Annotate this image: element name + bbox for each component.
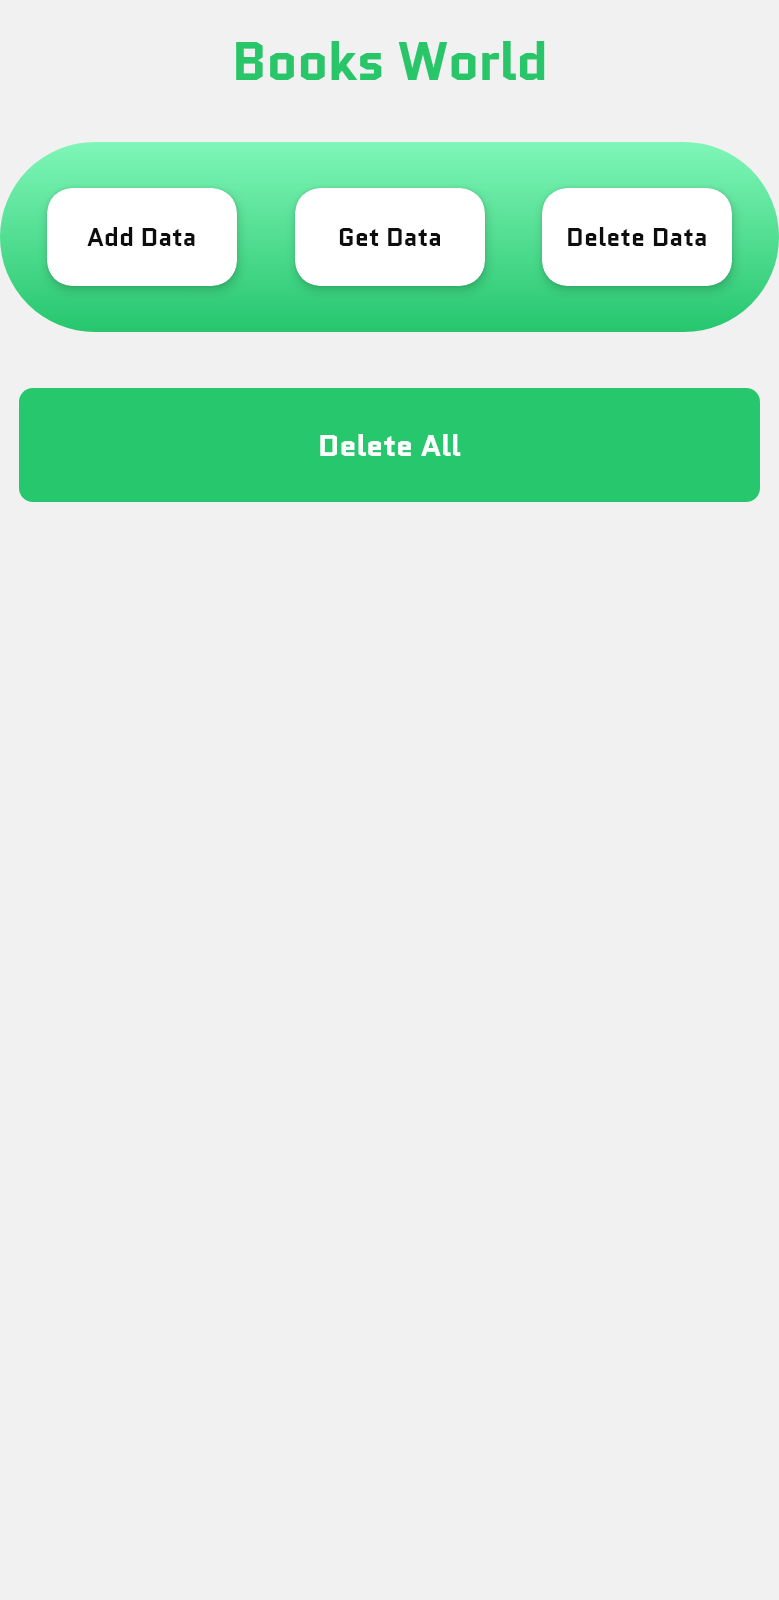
staticText: Delete Data: [566, 219, 708, 255]
staticText: Get Data: [338, 219, 442, 255]
staticText: Add Data: [87, 219, 197, 255]
staticText: Books World: [0, 24, 779, 100]
button[interactable]: Delete All: [19, 388, 760, 502]
button[interactable]: Delete Data: [542, 188, 732, 286]
button[interactable]: Get Data: [295, 188, 485, 286]
button[interactable]: Add Data: [47, 188, 237, 286]
staticText: Delete All: [318, 424, 461, 467]
